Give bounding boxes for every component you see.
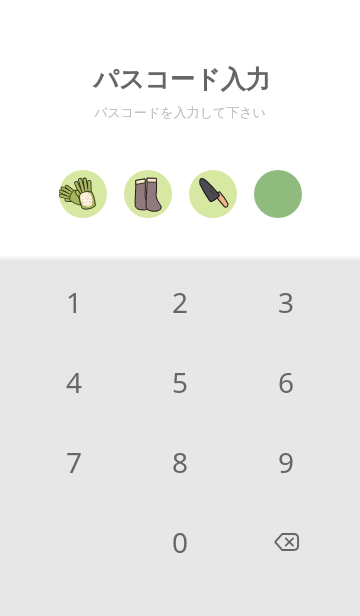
staticText: 1 <box>66 283 83 321</box>
button[interactable]: 5 <box>127 342 233 422</box>
button[interactable]: 4 <box>21 342 127 422</box>
staticText: 6 <box>278 363 295 401</box>
button[interactable]: Backspace <box>233 502 339 582</box>
button[interactable]: 7 <box>21 422 127 502</box>
button[interactable]: 2 <box>127 262 233 342</box>
staticText: 9 <box>278 443 295 481</box>
staticText: 5 <box>172 363 189 401</box>
button[interactable]: 8 <box>127 422 233 502</box>
staticText: 3 <box>278 283 295 321</box>
staticText: 0 <box>172 523 189 561</box>
button[interactable]: 6 <box>233 342 339 422</box>
staticText: パスコードを入力して下さい <box>94 104 266 120</box>
staticText: パスコード入力 <box>93 64 271 95</box>
staticText: 8 <box>172 443 189 481</box>
button[interactable]: 1 <box>21 262 127 342</box>
button[interactable]: 9 <box>233 422 339 502</box>
button[interactable]: 3 <box>233 262 339 342</box>
staticText: 7 <box>66 443 83 481</box>
staticText: 2 <box>172 283 189 321</box>
button[interactable]: 0 <box>127 502 233 582</box>
staticText: 4 <box>66 363 83 401</box>
